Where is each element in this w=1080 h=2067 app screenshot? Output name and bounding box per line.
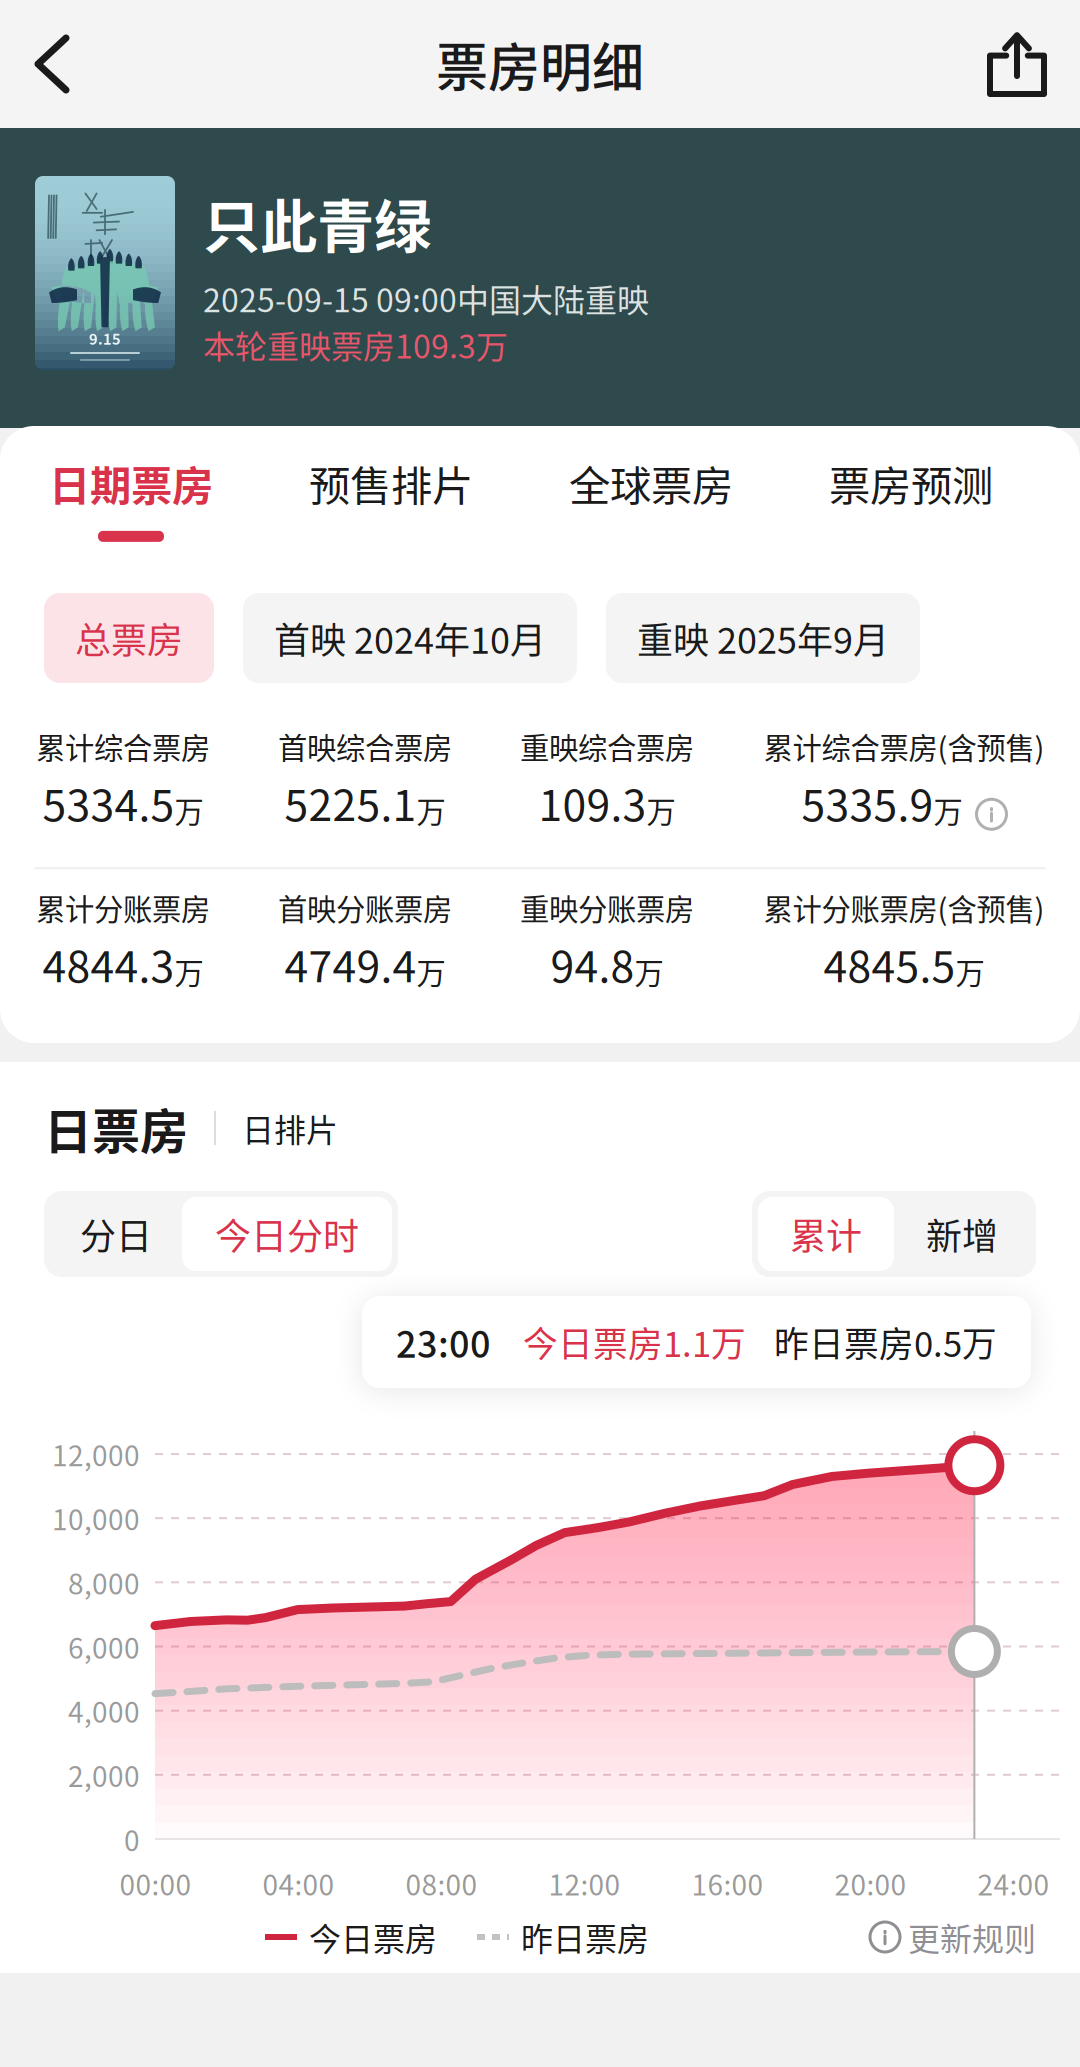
staticText: 4845.5 (823, 933, 955, 994)
staticText: 全球票房 (569, 453, 733, 513)
staticText: 5225.1 (284, 771, 416, 833)
button[interactable]: 票房预测 (781, 426, 1041, 552)
staticText: 2025-09-15 09:00中国大陆重映 (203, 275, 649, 321)
staticText: 2,000 (68, 1755, 140, 1795)
staticText: 4749.4 (284, 933, 416, 994)
staticText: 重映 2025年9月 (637, 612, 889, 664)
staticText: 首映 2024年10月 (274, 612, 546, 664)
button[interactable]: 分享 (954, 0, 1080, 128)
button[interactable]: 今日分时 (182, 1197, 392, 1271)
button[interactable]: 累计 (758, 1197, 894, 1271)
button[interactable]: 重映 2025年9月 (606, 593, 920, 683)
staticText: 日期票房 (49, 453, 213, 513)
staticText: 20:00 (834, 1863, 906, 1903)
staticText: 4,000 (68, 1690, 140, 1731)
staticText: 首映综合票房 (278, 725, 452, 767)
staticText: 万 (634, 950, 663, 992)
staticText: 日票房 (44, 1093, 188, 1163)
staticText: 总票房 (75, 612, 183, 664)
staticText: 累计分账票房 (36, 886, 210, 929)
staticText: 新增 (926, 1208, 998, 1260)
staticText: 累计分账票房(含预售) (763, 886, 1044, 929)
staticText: 万 (646, 789, 675, 831)
staticText: 累计综合票房 (36, 725, 210, 767)
staticText: 首映分账票房 (278, 886, 452, 929)
staticText: 9.15 (89, 328, 121, 349)
staticText: 累计 (790, 1208, 862, 1260)
button[interactable]: 总票房 (44, 593, 214, 683)
staticText: 票房明细 (436, 26, 644, 102)
staticText: 24:00 (977, 1863, 1049, 1903)
staticText: 5334.5 (42, 771, 174, 833)
staticText: 0 (124, 1819, 140, 1859)
staticText: 今日票房 (309, 1914, 437, 1960)
staticText: 12:00 (548, 1863, 620, 1903)
staticText: 万 (933, 789, 962, 831)
staticText: 万 (955, 950, 984, 992)
staticText: 00:00 (119, 1863, 191, 1903)
staticText: 今日票房1.1万 (523, 1317, 746, 1367)
staticText: 10,000 (52, 1498, 140, 1538)
button[interactable]: 新增 (894, 1197, 1030, 1271)
staticText: 万 (174, 950, 203, 992)
staticText: 累计综合票房(含预售) (763, 725, 1044, 767)
staticText: 109.3 (538, 771, 646, 833)
staticText: 日排片 (242, 1105, 338, 1151)
staticText: 昨日票房0.5万 (774, 1317, 997, 1367)
staticText: 08:00 (405, 1863, 477, 1903)
button[interactable]: 预售排片 (261, 426, 521, 552)
staticText: 04:00 (262, 1863, 334, 1903)
staticText: 94.8 (550, 933, 634, 994)
staticText: 12,000 (52, 1434, 140, 1474)
staticText: 只此青绿 (203, 181, 431, 264)
button[interactable]: 日排片 (242, 1105, 338, 1151)
staticText: 票房预测 (829, 453, 993, 513)
button[interactable]: 首映 2024年10月 (243, 593, 577, 683)
staticText: 分日 (80, 1208, 152, 1260)
button[interactable]: 日票房 (44, 1093, 188, 1163)
staticText: 更新规则 (908, 1914, 1036, 1960)
staticText: 16:00 (691, 1863, 763, 1903)
staticText: 重映综合票房 (520, 725, 694, 767)
button[interactable]: 全球票房 (521, 426, 781, 552)
staticText: 23:00 (396, 1316, 491, 1368)
button[interactable]: 更新规则 (870, 1914, 1036, 1960)
staticText: 重映分账票房 (520, 886, 694, 929)
staticText: 本轮重映票房109.3万 (203, 321, 508, 368)
staticText: 万 (416, 789, 445, 831)
staticText: 昨日票房 (521, 1914, 649, 1960)
staticText: 4844.3 (42, 933, 174, 994)
button[interactable]: 返回 (0, 0, 104, 128)
button[interactable]: 分日 (50, 1197, 182, 1271)
staticText: 万 (174, 789, 203, 831)
staticText: 万 (416, 950, 445, 992)
staticText: 5335.9 (801, 771, 933, 833)
staticText: 今日分时 (215, 1208, 359, 1260)
button[interactable]: 日期票房 (1, 426, 261, 552)
staticText: 8,000 (68, 1562, 140, 1603)
staticText: 预售排片 (309, 453, 473, 513)
staticText: 6,000 (68, 1626, 140, 1667)
